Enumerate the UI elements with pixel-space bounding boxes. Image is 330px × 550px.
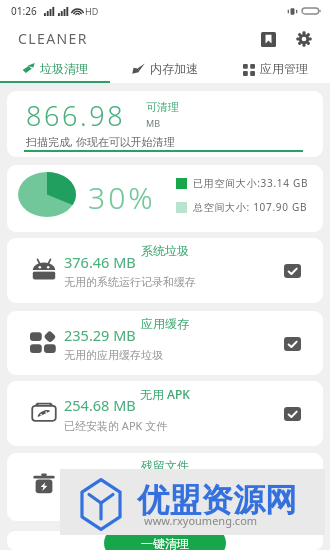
button[interactable]: Select 残留文件	[284, 479, 301, 493]
staticText: 235.29 MB	[64, 325, 136, 345]
staticText: 已用空间大小:33.14 GB	[193, 176, 309, 190]
button[interactable]: 应用管理	[220, 55, 330, 81]
staticText: 01:26	[11, 4, 37, 18]
button[interactable]: 无用 APK	[7, 381, 323, 446]
button[interactable]: Settings	[292, 27, 316, 51]
staticText: MB	[146, 117, 161, 129]
staticText: 卸载应用残留的文件	[64, 490, 163, 504]
staticText: 无用的应用缓存垃圾	[64, 348, 163, 362]
staticText: 已经安装的 APK 文件	[64, 418, 168, 433]
staticText: 30%	[88, 177, 156, 218]
staticText: 扫描完成, 你现在可以开始清理	[26, 134, 175, 149]
button[interactable]: 系统垃圾	[7, 238, 323, 303]
staticText: 垃圾清理	[40, 61, 88, 76]
button[interactable]: 866.98	[7, 91, 323, 157]
staticText: 一键清理	[141, 536, 189, 550]
button[interactable]: 残留文件	[7, 453, 323, 521]
staticText: 无用的系统运行记录和缓存	[64, 275, 196, 289]
staticText: 总空间大小: 107.90 GB	[193, 200, 308, 214]
button[interactable]: 垃圾清理	[0, 55, 110, 81]
staticText: 376.46 MB	[64, 252, 136, 272]
staticText: 残留文件	[141, 458, 189, 473]
staticText: 254.68 MB	[64, 395, 136, 415]
staticText: 应用管理	[260, 61, 308, 76]
staticText: 系统垃圾	[141, 243, 189, 258]
button[interactable]: Select 应用缓存	[284, 337, 301, 351]
staticText: 可清理	[146, 100, 179, 114]
staticText: HD	[85, 5, 99, 17]
staticText: CLEANER	[18, 29, 88, 48]
staticText: 126.11 MB	[64, 467, 136, 487]
staticText: 内存加速	[150, 61, 198, 76]
button[interactable]	[7, 531, 323, 550]
staticText: 无用 APK	[140, 386, 190, 402]
button[interactable]: Select 系统垃圾	[284, 264, 301, 278]
staticText: 应用缓存	[141, 316, 189, 331]
button[interactable]: 一键清理	[104, 528, 226, 550]
staticText: 866.98	[26, 97, 126, 134]
button[interactable]: 应用缓存	[7, 311, 323, 375]
button[interactable]: 内存加速	[110, 55, 220, 81]
staticText: 优盟资源网	[137, 480, 297, 520]
staticText: www.rxyoumeng.com	[144, 513, 258, 528]
button[interactable]: 30%	[7, 165, 323, 232]
button[interactable]: Bookmarks	[256, 27, 280, 51]
button[interactable]: Select 无用 APK	[284, 407, 301, 421]
